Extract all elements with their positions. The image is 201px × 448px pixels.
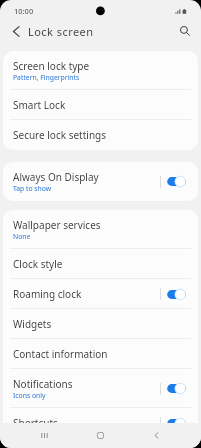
button[interactable]: Contact information bbox=[3, 339, 198, 369]
staticText: Icons only bbox=[13, 391, 46, 400]
staticText: Wallpaper services bbox=[13, 218, 101, 232]
staticText: 10:00 bbox=[14, 6, 34, 16]
button[interactable]: Home bbox=[72, 423, 128, 448]
button[interactable]: Always On Display bbox=[3, 162, 198, 201]
button[interactable]: Toggle Shortcuts bbox=[167, 417, 186, 423]
button[interactable]: Screen lock type bbox=[3, 51, 198, 90]
button[interactable]: Navigate up bbox=[0, 17, 32, 43]
button[interactable]: Toggle Always On Display bbox=[167, 175, 186, 188]
staticText: Contact information bbox=[13, 347, 108, 361]
button[interactable]: Back bbox=[128, 423, 184, 448]
button[interactable]: Roaming clock bbox=[3, 279, 198, 309]
staticText: Lock screen bbox=[28, 24, 94, 39]
staticText: Screen lock type bbox=[13, 59, 90, 73]
button[interactable]: Secure lock settings bbox=[3, 120, 198, 150]
staticText: Smart Lock bbox=[13, 98, 66, 112]
staticText: Secure lock settings bbox=[13, 128, 106, 142]
button[interactable]: Toggle Roaming clock bbox=[167, 288, 186, 301]
button[interactable]: Recent apps bbox=[16, 423, 72, 448]
staticText: Widgets bbox=[13, 317, 52, 331]
button[interactable]: Notifications bbox=[3, 369, 198, 408]
staticText: Shortcuts bbox=[13, 416, 58, 423]
staticText: Always On Display bbox=[13, 170, 99, 184]
staticText: Clock style bbox=[13, 257, 63, 271]
staticText: None bbox=[13, 232, 31, 241]
button[interactable]: Search bbox=[169, 17, 201, 43]
button[interactable]: Clock style bbox=[3, 249, 198, 279]
button[interactable]: Widgets bbox=[3, 309, 198, 339]
button[interactable]: Toggle Notifications bbox=[167, 382, 186, 395]
button[interactable]: Wallpaper services bbox=[3, 210, 198, 249]
button[interactable]: Shortcuts bbox=[3, 408, 198, 423]
button[interactable]: Smart Lock bbox=[3, 90, 198, 120]
staticText: Tap to show bbox=[13, 184, 52, 193]
staticText: Roaming clock bbox=[13, 287, 82, 301]
staticText: Notifications bbox=[13, 377, 73, 391]
staticText: Pattern, Fingerprints bbox=[13, 73, 80, 82]
